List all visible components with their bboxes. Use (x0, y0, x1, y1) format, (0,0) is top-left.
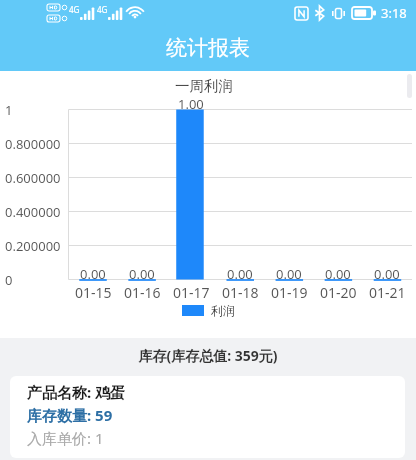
staticText: 0.00 (374, 265, 400, 283)
staticText: 1 (5, 101, 13, 119)
staticText: 01-19 (271, 283, 308, 302)
staticText: 0 (5, 271, 13, 289)
staticText: 库存数量: 59 (27, 405, 113, 425)
staticText: 0.00 (325, 265, 351, 283)
staticText: 0.600000 (5, 169, 61, 187)
staticText: 01-20 (320, 283, 357, 302)
staticText: 统计报表 (166, 35, 250, 61)
staticText: 0.00 (129, 265, 155, 283)
staticText: 入库单价: 1 (27, 428, 104, 448)
staticText: 0.800000 (5, 135, 61, 153)
staticText: 利润 (211, 303, 235, 318)
staticText: 1.00 (178, 95, 204, 113)
button[interactable]: 产品名称: 鸡蛋 (10, 376, 405, 458)
staticText: 01-18 (222, 283, 259, 302)
staticText: 产品名称: 鸡蛋 (27, 382, 126, 402)
staticText: 01-17 (173, 283, 210, 302)
staticText: 0.200000 (5, 237, 61, 255)
staticText: 4G (69, 4, 80, 15)
staticText: 01-15 (75, 283, 112, 302)
staticText: 0.00 (276, 265, 302, 283)
staticText: 01-16 (124, 283, 161, 302)
staticText: 一周利润 (175, 77, 233, 95)
staticText: 0.400000 (5, 203, 61, 221)
staticText: 01-21 (369, 283, 406, 302)
staticText: 库存(库存总值: 359元) (0, 346, 416, 365)
staticText: 3:18 (381, 4, 407, 22)
staticText: 0.00 (227, 265, 253, 283)
staticText: 4G (97, 4, 108, 15)
staticText: 0.00 (80, 265, 106, 283)
